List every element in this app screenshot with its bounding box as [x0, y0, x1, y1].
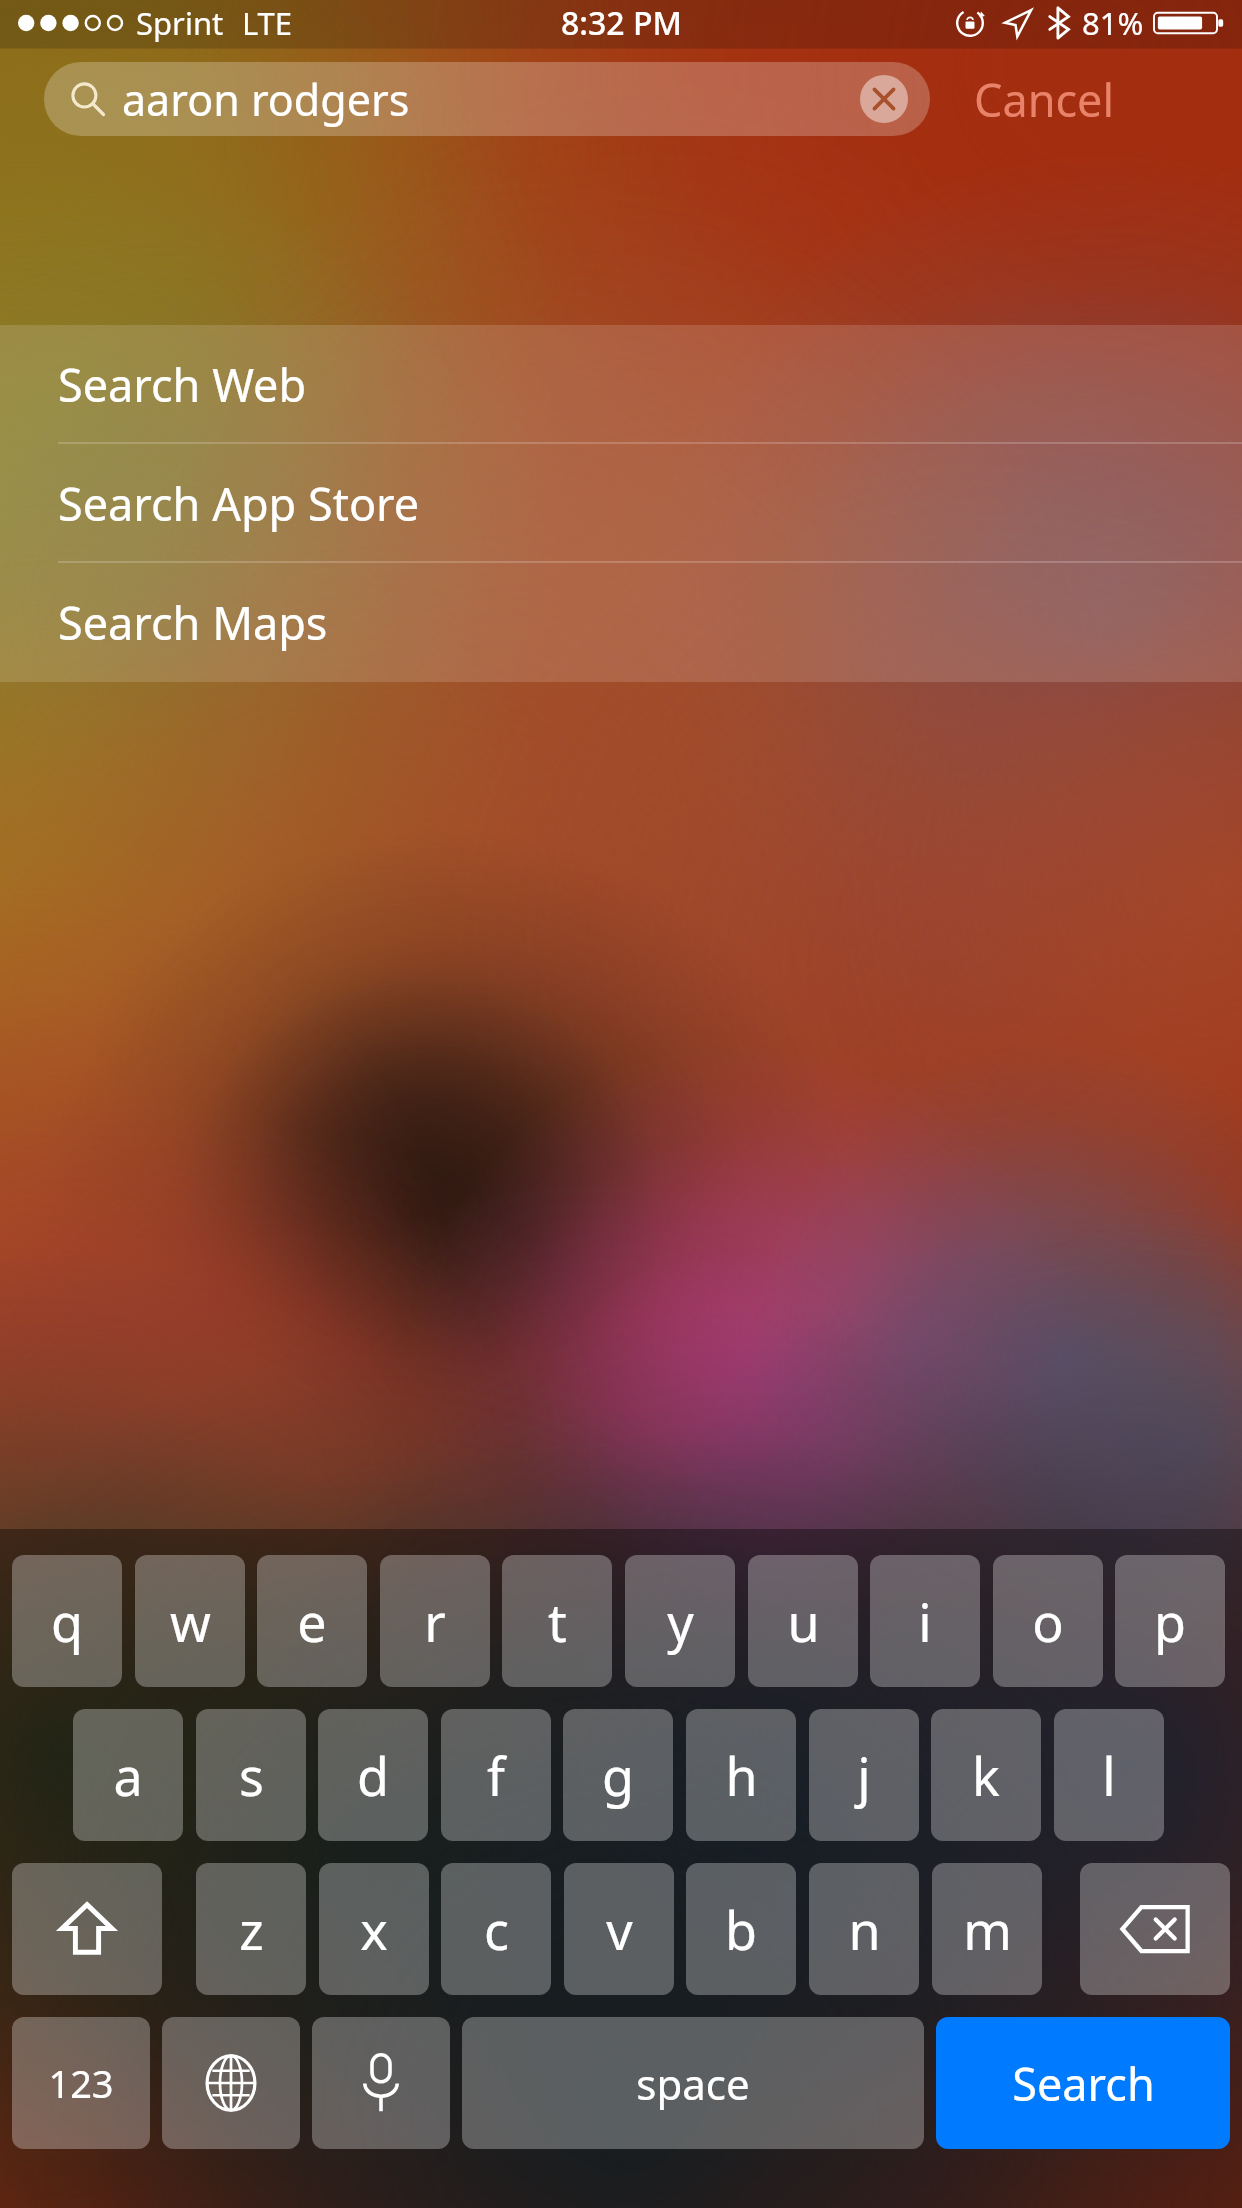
button[interactable]: t — [502, 1555, 612, 1687]
button[interactable]: c — [441, 1863, 551, 1995]
staticText: u — [787, 1586, 820, 1657]
button[interactable]: f — [441, 1709, 551, 1841]
staticText: y — [667, 1586, 694, 1657]
staticText: n — [848, 1894, 881, 1965]
staticText: j — [857, 1740, 871, 1811]
button[interactable]: Space — [462, 2017, 924, 2149]
staticText: b — [725, 1894, 757, 1965]
button[interactable]: z — [196, 1863, 306, 1995]
staticText: w — [170, 1586, 211, 1657]
button[interactable]: s — [196, 1709, 306, 1841]
staticText: LTE — [242, 2, 293, 44]
button[interactable]: Search — [936, 2017, 1230, 2149]
staticText: Search Web — [58, 354, 307, 415]
button[interactable]: d — [318, 1709, 428, 1841]
staticText: 81% — [1082, 2, 1144, 44]
button[interactable]: Backspace — [1080, 1863, 1230, 1995]
staticText: m — [963, 1894, 1012, 1965]
button[interactable]: y — [625, 1555, 735, 1687]
staticText: d — [357, 1740, 389, 1811]
button[interactable]: i — [870, 1555, 980, 1687]
button[interactable]: h — [686, 1709, 796, 1841]
button[interactable]: g — [563, 1709, 673, 1841]
button[interactable]: p — [1115, 1555, 1225, 1687]
button[interactable]: w — [135, 1555, 245, 1687]
staticText: a — [113, 1740, 143, 1811]
staticText: g — [602, 1740, 634, 1811]
staticText: c — [484, 1894, 509, 1965]
staticText: 123 — [48, 2057, 114, 2109]
button[interactable]: v — [564, 1863, 674, 1995]
staticText: k — [972, 1740, 1000, 1811]
button[interactable]: a — [73, 1709, 183, 1841]
staticText: v — [606, 1894, 633, 1965]
staticText: i — [918, 1586, 932, 1657]
button[interactable]: x — [319, 1863, 429, 1995]
button[interactable]: e — [257, 1555, 367, 1687]
button[interactable]: k — [931, 1709, 1041, 1841]
button[interactable]: Change keyboard — [162, 2017, 300, 2149]
staticText: o — [1032, 1586, 1064, 1657]
staticText: space — [636, 2055, 750, 2112]
button[interactable]: b — [686, 1863, 796, 1995]
button[interactable]: Shift — [12, 1863, 162, 1995]
staticText: h — [725, 1740, 758, 1811]
button[interactable]: Clear text — [860, 75, 908, 123]
button[interactable]: j — [809, 1709, 919, 1841]
staticText: Search — [1012, 2053, 1155, 2114]
staticText: p — [1154, 1586, 1186, 1657]
staticText: 8:32 PM — [561, 1, 682, 45]
button[interactable]: Numbers — [12, 2017, 150, 2149]
button[interactable]: l — [1054, 1709, 1164, 1841]
button[interactable]: r — [380, 1555, 490, 1687]
staticText: Search Maps — [58, 592, 328, 653]
staticText: x — [360, 1894, 388, 1965]
staticText: Cancel — [974, 69, 1115, 130]
staticText: Sprint — [136, 2, 224, 44]
staticText: Search App Store — [58, 473, 420, 534]
button[interactable]: aaron rodgers — [44, 62, 930, 136]
staticText: e — [297, 1586, 327, 1657]
button[interactable]: Dictation — [312, 2017, 450, 2149]
button[interactable]: q — [12, 1555, 122, 1687]
staticText: s — [239, 1740, 264, 1811]
button[interactable]: u — [748, 1555, 858, 1687]
button[interactable]: Cancel — [946, 62, 1142, 136]
staticText: z — [239, 1894, 264, 1965]
staticText: r — [424, 1586, 446, 1657]
staticText: aaron rodgers — [122, 70, 410, 129]
button[interactable]: Search App Store — [0, 444, 1242, 563]
staticText: f — [487, 1740, 505, 1811]
button[interactable]: n — [809, 1863, 919, 1995]
staticText: q — [51, 1586, 83, 1657]
button[interactable]: Search Maps — [0, 563, 1242, 682]
staticText: l — [1102, 1740, 1116, 1811]
button[interactable]: m — [932, 1863, 1042, 1995]
staticText: t — [548, 1586, 567, 1657]
button[interactable]: o — [993, 1555, 1103, 1687]
button[interactable]: Search Web — [0, 325, 1242, 444]
